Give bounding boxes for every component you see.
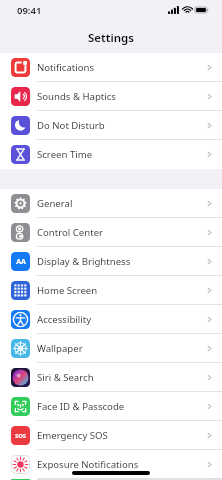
button[interactable]: General [0, 189, 222, 218]
staticText: 09:41 [17, 4, 42, 17]
button[interactable]: AA [0, 247, 222, 276]
staticText: AA [16, 257, 26, 267]
button[interactable]: Control Center [0, 218, 222, 247]
button[interactable]: Exposure Notifications [0, 450, 222, 479]
button[interactable]: Notifications [0, 53, 222, 82]
staticText: SOS [15, 432, 26, 440]
button[interactable]: SOS [0, 421, 222, 450]
staticText: Exposure Notifications [37, 458, 139, 471]
button[interactable]: Home Screen [0, 276, 222, 305]
staticText: Notifications [37, 61, 95, 74]
staticText: Face ID & Passcode [37, 400, 125, 413]
button[interactable]: Do Not Disturb [0, 111, 222, 140]
staticText: Do Not Disturb [37, 119, 105, 132]
button[interactable]: Battery [0, 479, 222, 480]
staticText: Accessibility [37, 313, 92, 326]
staticText: Emergency SOS [37, 429, 108, 442]
staticText: Settings [88, 30, 134, 46]
button[interactable]: Accessibility [0, 305, 222, 334]
button[interactable]: Screen Time [0, 140, 222, 169]
staticText: Screen Time [37, 148, 93, 161]
staticText: Control Center [37, 226, 104, 239]
button[interactable]: Face ID & Passcode [0, 392, 222, 421]
button[interactable]: Sounds & Haptics [0, 82, 222, 111]
button[interactable]: Wallpaper [0, 334, 222, 363]
staticText: Sounds & Haptics [37, 90, 116, 103]
staticText: General [37, 197, 73, 210]
staticText: Home Screen [37, 284, 98, 297]
staticText: Wallpaper [37, 342, 83, 355]
staticText: Display & Brightness [37, 255, 131, 268]
button[interactable]: Siri & Search [0, 363, 222, 392]
staticText: Siri & Search [37, 371, 94, 384]
